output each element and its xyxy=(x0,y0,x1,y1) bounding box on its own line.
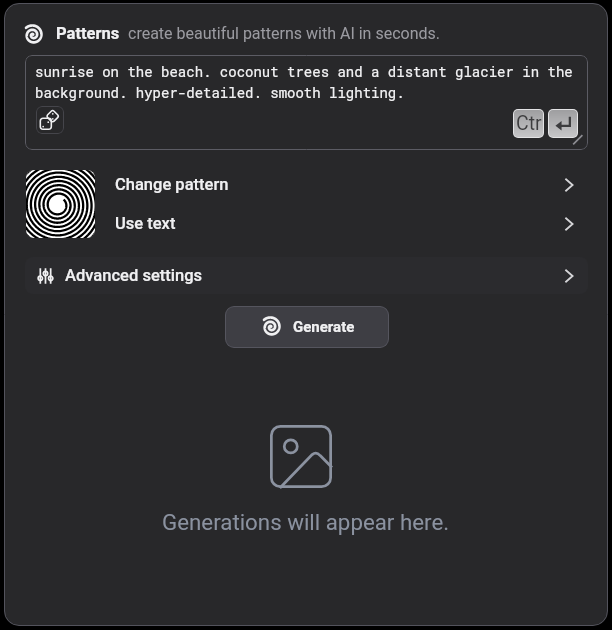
staticText: Change pattern xyxy=(115,175,229,194)
button[interactable]: Randomize prompt xyxy=(36,106,64,134)
button[interactable]: Generate xyxy=(225,306,389,348)
button[interactable]: Change pattern xyxy=(115,166,578,203)
staticText: Patterns xyxy=(56,24,120,43)
staticText: create beautiful patterns with AI in sec… xyxy=(128,24,440,43)
staticText: Use text xyxy=(115,214,176,233)
button[interactable]: Current pattern xyxy=(26,170,95,238)
staticText: Advanced settings xyxy=(65,266,203,285)
button[interactable]: Send prompt xyxy=(549,110,577,137)
staticText: Generate xyxy=(293,318,355,336)
button[interactable]: Use text xyxy=(115,205,578,242)
staticText: Generations will appear here. xyxy=(162,509,450,535)
staticText: sunrise on the beach. coconut trees and … xyxy=(35,62,575,101)
button[interactable]: Advanced settings xyxy=(25,257,588,294)
staticText: Ctrl xyxy=(516,112,543,135)
